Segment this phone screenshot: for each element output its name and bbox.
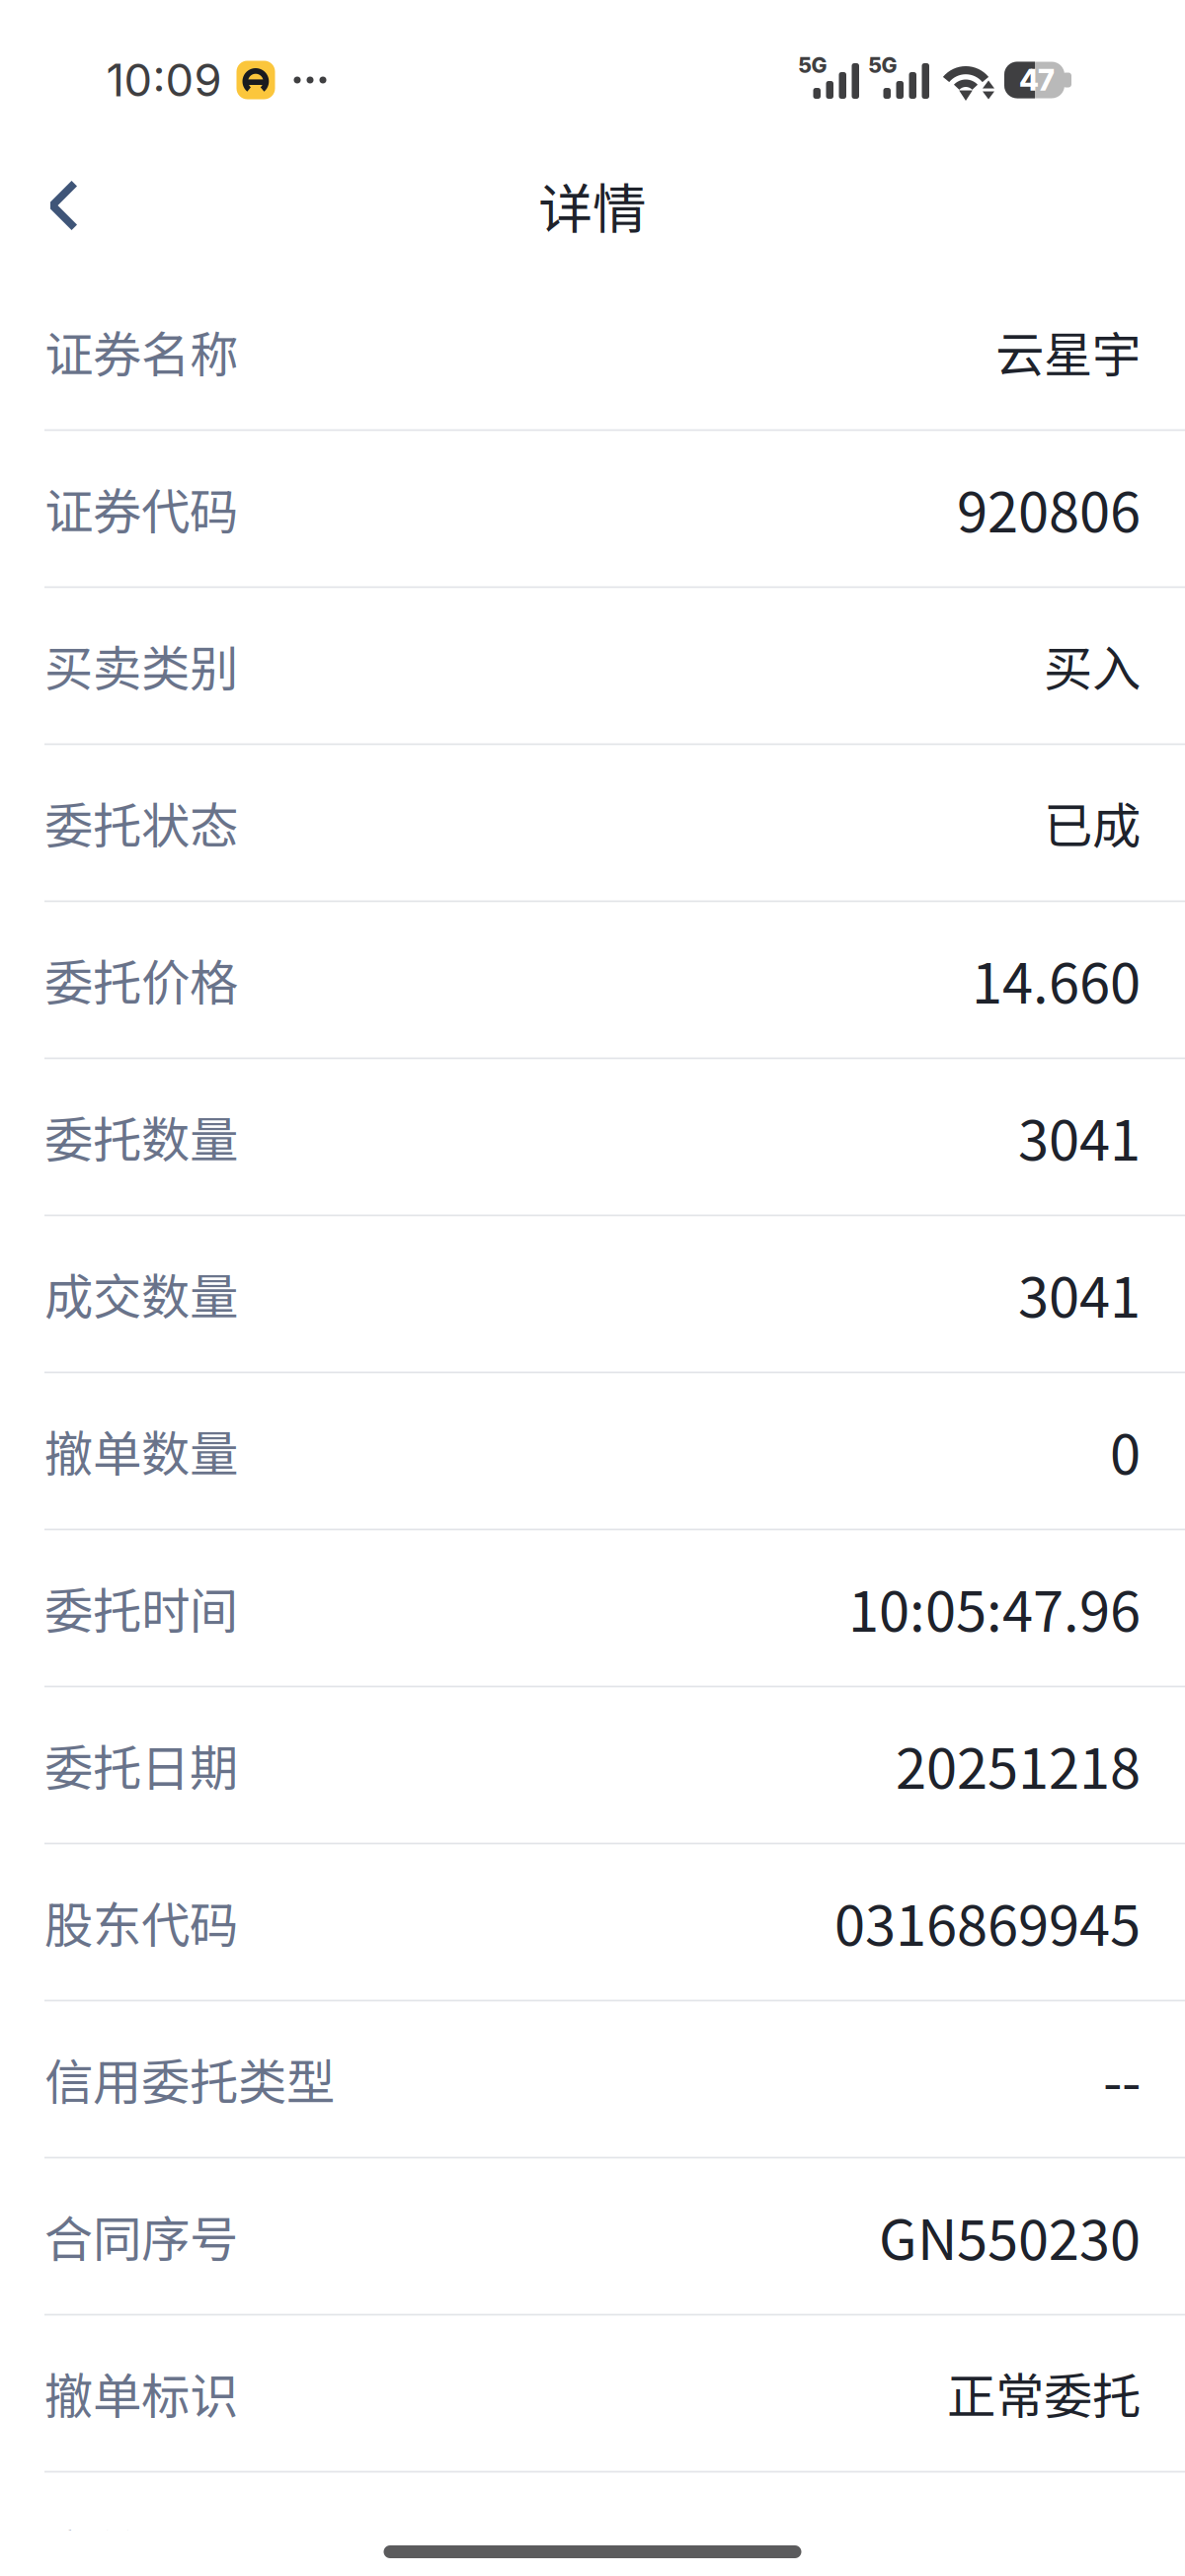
button[interactable]: 信用委托类型 <box>0 2000 1185 2157</box>
button[interactable]: 委托时间 <box>0 1529 1185 1686</box>
button[interactable]: 委托状态 <box>0 744 1185 901</box>
staticText: 5G <box>798 53 827 78</box>
button[interactable]: 买卖类别 <box>0 587 1185 744</box>
staticText: 已成 <box>1044 787 1141 858</box>
staticText: 买卖类别 <box>44 630 238 700</box>
staticText: 20251218 <box>896 1725 1141 1805</box>
staticText: 10:09 <box>106 53 222 107</box>
button[interactable]: Back <box>0 138 128 273</box>
staticText: 5G <box>869 53 897 78</box>
staticText: 3041 <box>1018 1096 1141 1176</box>
staticText: 委托时间 <box>44 1572 238 1643</box>
button[interactable]: 撤单标识 <box>0 2314 1185 2471</box>
staticText: 撤单标识 <box>44 2358 238 2428</box>
staticText: 撤单数量 <box>44 1415 238 1486</box>
button[interactable]: 股东代码 <box>0 1843 1185 2000</box>
staticText: 3041 <box>1018 1253 1141 1334</box>
button[interactable]: 委托日期 <box>0 1686 1185 1843</box>
button[interactable]: 委托价格 <box>0 901 1185 1058</box>
staticText: GN550230 <box>879 2196 1141 2276</box>
staticText: 委托状态 <box>44 787 238 858</box>
button[interactable]: 成交数量 <box>0 1215 1185 1372</box>
staticText: 股东代码 <box>44 1886 238 1957</box>
button[interactable]: 撤单数量 <box>0 1372 1185 1529</box>
staticText: 详情 <box>538 166 647 245</box>
staticText: 证券名称 <box>44 316 238 386</box>
button[interactable]: 废单原因 <box>0 2471 1185 2576</box>
staticText: 成交数量 <box>44 1258 238 1329</box>
button[interactable]: 合同序号 <box>0 2157 1185 2314</box>
staticText: 买入 <box>1044 630 1141 700</box>
staticText: 14.660 <box>972 939 1141 1019</box>
staticText: 920806 <box>957 468 1141 548</box>
button[interactable]: 证券代码 <box>0 430 1185 587</box>
staticText: 0316869945 <box>834 1882 1141 1962</box>
staticText: 47 <box>1019 63 1055 98</box>
button[interactable]: 委托数量 <box>0 1058 1185 1215</box>
button[interactable]: 证券名称 <box>0 273 1185 430</box>
staticText: -- <box>1103 2039 1141 2119</box>
staticText: 合同序号 <box>44 2200 238 2271</box>
staticText: 10:05:47.96 <box>848 1568 1141 1648</box>
staticText: 委托价格 <box>44 944 238 1015</box>
staticText: 0 <box>1110 1410 1141 1491</box>
staticText: 云星宇 <box>995 316 1141 386</box>
staticText: 正常委托 <box>947 2358 1141 2428</box>
staticText: 委托数量 <box>44 1101 238 1172</box>
staticText: 证券代码 <box>44 473 238 543</box>
staticText: 委托日期 <box>44 1729 238 1800</box>
staticText: 信用委托类型 <box>44 2043 335 2114</box>
